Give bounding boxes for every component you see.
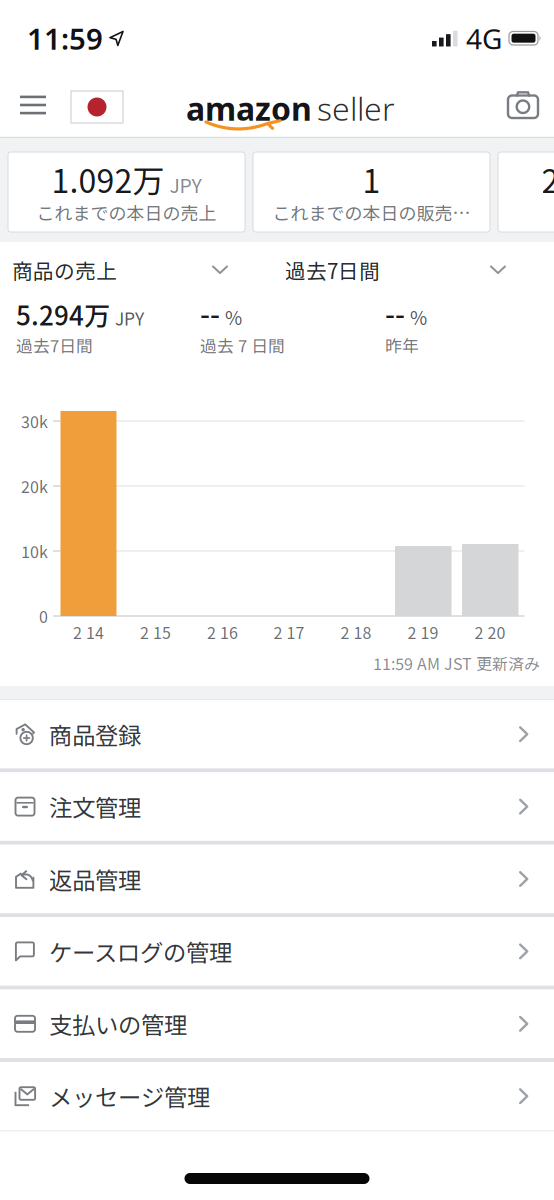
button[interactable]: 商品登録 [0,700,554,768]
button[interactable]: 1 [253,152,490,232]
staticText: 過去7日間 [16,333,93,357]
button[interactable]: メッセージ管理 [0,1062,554,1130]
staticText: これまでの本日の売上 [36,199,216,225]
staticText: JPY [169,170,201,198]
staticText: 10k [21,539,48,563]
staticText: 商品登録 [49,717,141,751]
staticText: 2 20 [474,620,505,644]
staticText: 1 [362,156,380,202]
staticText: amazon [186,87,312,129]
staticText: 昨年 [385,333,419,357]
staticText: % [410,303,427,330]
staticText: 注文管理 [49,790,141,823]
staticText: -- [200,292,220,333]
button[interactable]: 注文管理 [0,772,554,841]
staticText: 30k [21,409,48,433]
button[interactable]: 支払いの管理 [0,990,554,1058]
staticText: 5.294万 [16,295,110,333]
staticText: seller [317,87,395,129]
button[interactable]: 過去7日間 [285,255,506,285]
staticText: メッセージ管理 [49,1079,210,1113]
staticText: 2 18 [340,620,371,644]
button[interactable]: Menu [20,95,46,114]
staticText: 返品管理 [49,862,141,896]
staticText: 支払いの管理 [49,1007,187,1041]
button[interactable]: Scan product [508,91,538,118]
staticText: 1.092万 [51,156,164,202]
button[interactable]: 1.092万 [8,152,245,232]
staticText: 0 [39,604,48,628]
staticText: 2 19 [407,620,438,644]
button[interactable]: ケースログの管理 [0,917,554,986]
staticText: 2 15 [140,620,171,644]
button[interactable]: 2.161万 [498,152,554,232]
button[interactable]: 返品管理 [0,845,554,913]
staticText: JPY [115,305,144,330]
staticText: 過去 7 日間 [200,333,285,357]
staticText: 2 17 [273,620,304,644]
staticText: 11:59 AM JST 更新済み [373,651,540,675]
staticText: 4G [466,20,502,57]
button[interactable]: 商品の売上 [12,255,228,285]
staticText: -- [385,292,405,333]
staticText: 2.161万 [541,156,554,202]
staticText: 2 16 [207,620,238,644]
staticText: % [225,303,242,330]
staticText: 20k [21,474,48,498]
staticText: ケースログの管理 [49,934,232,968]
button[interactable]: Marketplace Japan [71,91,123,123]
staticText: 商品の売上 [12,255,117,285]
staticText: これまでの本日の販売… [272,199,470,225]
staticText: 11:59 [27,19,103,58]
staticText: 2 14 [73,620,104,644]
staticText: 過去7日間 [285,255,380,285]
